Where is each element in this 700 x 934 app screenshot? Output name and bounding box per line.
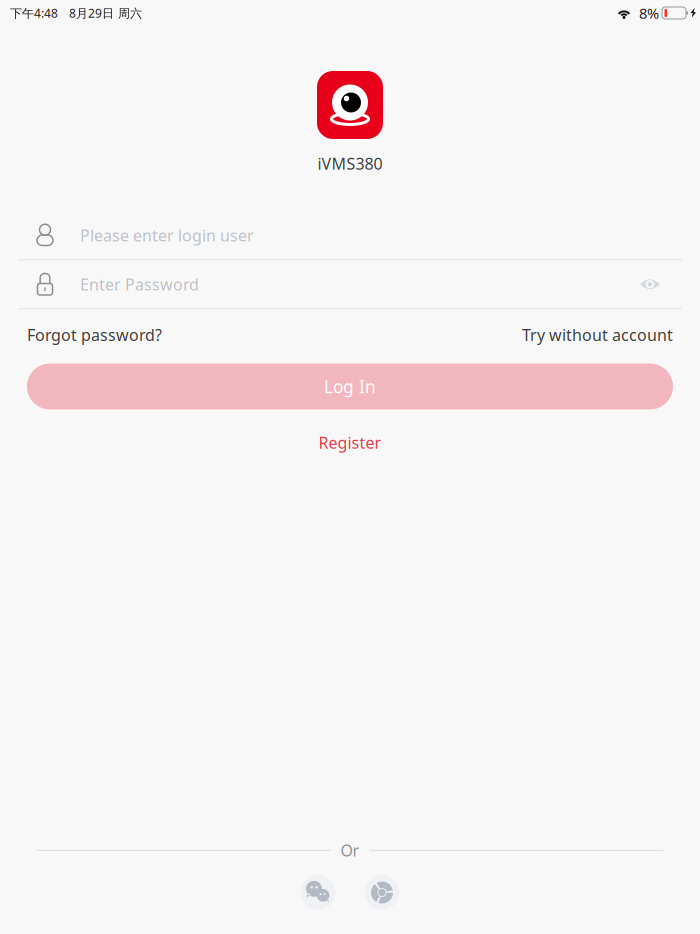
staticText: Try without account (522, 324, 673, 345)
staticText: Or (340, 840, 359, 861)
staticText: Enter Password (80, 274, 199, 295)
button[interactable]: Please enter login user (18, 211, 682, 259)
staticText: Log In (324, 375, 376, 398)
button[interactable]: Register (318, 429, 381, 455)
button[interactable]: Forgot password? (27, 324, 162, 345)
staticText: Register (318, 432, 381, 453)
staticText: Forgot password? (27, 324, 162, 345)
button[interactable]: Sign in with Google (364, 875, 399, 910)
button[interactable]: Try without account (522, 324, 673, 345)
button[interactable]: Show password (628, 260, 672, 308)
staticText: iVMS380 (317, 153, 382, 174)
staticText: 下午4:48 (10, 5, 58, 21)
button[interactable]: Log In (27, 363, 673, 409)
button[interactable]: Enter Password (18, 260, 628, 308)
button[interactable]: Sign in with WeChat (300, 875, 335, 910)
staticText: 8月29日 周六 (69, 5, 142, 21)
staticText: Please enter login user (80, 225, 254, 246)
staticText: 8% (639, 3, 659, 23)
